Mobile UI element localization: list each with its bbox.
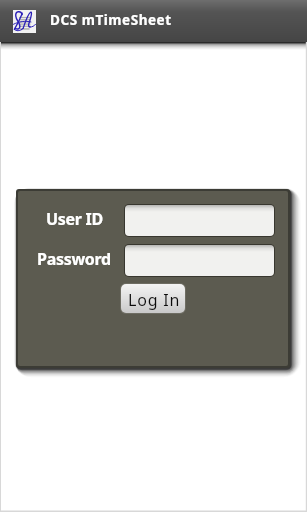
staticText: DCS mTimeSheet	[50, 11, 172, 29]
button[interactable]: Password input	[125, 245, 274, 276]
staticText: Password	[37, 248, 111, 270]
button[interactable]: App logo	[13, 10, 36, 33]
button[interactable]: User ID input	[125, 205, 274, 236]
button[interactable]: Log In	[121, 284, 185, 313]
staticText: User ID	[46, 208, 103, 230]
staticText: Log In	[128, 289, 181, 311]
